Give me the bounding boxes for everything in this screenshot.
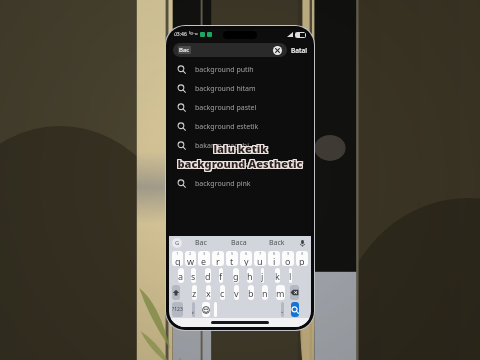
staticText: ,	[192, 304, 195, 315]
staticText: background putih	[195, 65, 254, 75]
button[interactable]: Baca	[220, 236, 258, 250]
staticText: h	[247, 270, 253, 282]
staticText: r	[216, 255, 220, 266]
staticText: z	[192, 287, 197, 299]
button[interactable]: v	[234, 285, 239, 300]
button[interactable]: 5	[226, 251, 238, 266]
button[interactable]: 9	[282, 251, 294, 266]
button[interactable]: s	[191, 268, 196, 283]
staticText: lalu ketik	[214, 141, 269, 156]
button[interactable]: background pink	[169, 174, 311, 193]
button[interactable]: Back	[258, 236, 296, 250]
button[interactable]: l	[289, 268, 292, 283]
button[interactable]: 2	[185, 251, 196, 266]
staticText: Back	[269, 238, 285, 248]
staticText: ?123	[172, 306, 183, 313]
button[interactable]: background putih	[169, 60, 311, 79]
button[interactable]: b	[248, 285, 254, 300]
button[interactable]: 6	[240, 251, 252, 266]
button[interactable]: bakaran magubi	[169, 136, 311, 155]
staticText: Bac	[179, 46, 190, 54]
button[interactable]: Voice input	[296, 237, 308, 249]
staticText: v	[234, 287, 239, 299]
button[interactable]: 7	[254, 251, 266, 266]
staticText: background Aesthetic	[178, 157, 304, 172]
staticText: lalu ketik	[214, 140, 269, 155]
button[interactable]: 8	[268, 251, 280, 266]
staticText: a	[178, 270, 184, 282]
staticText: background Aesthetic	[177, 155, 303, 170]
button[interactable]: Bac	[178, 43, 282, 57]
button[interactable]	[214, 302, 217, 317]
button[interactable]: z	[192, 285, 197, 300]
button[interactable]: 1	[172, 251, 183, 266]
button[interactable]: g	[233, 268, 239, 283]
button[interactable]: a	[178, 268, 184, 283]
button[interactable]: background estetik	[169, 117, 311, 136]
staticText: w	[187, 255, 195, 266]
staticText: background Aesthetic	[177, 156, 303, 171]
button[interactable]: Google	[172, 238, 182, 248]
button[interactable]: 3	[198, 251, 210, 266]
staticText: y	[244, 255, 249, 266]
staticText: background Aesthetic	[176, 157, 302, 172]
staticText: i	[273, 255, 276, 266]
staticText: background Aesthetic	[177, 157, 303, 172]
staticText: m	[276, 287, 285, 299]
button[interactable]: d	[205, 268, 211, 283]
button[interactable]: ,	[192, 302, 195, 317]
button[interactable]: .	[281, 302, 284, 317]
staticText: n	[262, 287, 268, 299]
staticText: b	[248, 287, 254, 299]
staticText: o	[285, 255, 291, 266]
staticText: .	[281, 304, 284, 315]
button[interactable]	[291, 302, 299, 317]
staticText: background Aesthetic	[176, 155, 302, 170]
button[interactable]: f	[219, 268, 223, 283]
staticText: background estetik	[195, 122, 259, 132]
staticText: 03:46	[174, 31, 187, 38]
staticText: background Aesthetic	[178, 155, 304, 170]
staticText: lalu ketik	[214, 142, 269, 157]
staticText: Baca	[231, 238, 247, 248]
staticText: lalu ketik	[213, 141, 268, 156]
staticText: 3	[203, 251, 206, 256]
button[interactable]: background hitam	[169, 79, 311, 98]
button[interactable]: 0	[296, 251, 308, 266]
staticText: 2	[189, 251, 192, 256]
button[interactable]: n	[262, 285, 268, 300]
button[interactable]: h	[247, 268, 253, 283]
button[interactable]: Batal	[291, 46, 307, 55]
button[interactable]: c	[220, 285, 225, 300]
staticText: lalu ketik	[212, 140, 267, 155]
button[interactable]: ?123	[172, 302, 183, 317]
button[interactable]: background pastel	[169, 98, 311, 117]
staticText: x	[206, 287, 211, 299]
button[interactable]: m	[276, 285, 285, 300]
staticText: k	[275, 270, 280, 282]
staticText: 7	[259, 251, 262, 256]
button[interactable]: Bac	[182, 236, 220, 250]
button[interactable]: 4	[212, 251, 224, 266]
button[interactable]: k	[275, 268, 280, 283]
staticText: background pastel	[195, 103, 257, 113]
button[interactable]	[290, 285, 299, 300]
staticText: j	[261, 270, 264, 282]
staticText: background Aesthetic	[178, 156, 304, 171]
staticText: 4	[217, 251, 220, 256]
staticText: 5	[231, 251, 234, 256]
staticText: d	[205, 270, 211, 282]
button[interactable]	[172, 285, 180, 300]
staticText: Batal	[291, 46, 307, 55]
button[interactable]: x	[206, 285, 211, 300]
staticText: ⁵ᴳ⁺ ᵛᵒ	[189, 32, 198, 37]
button[interactable]: j	[261, 268, 264, 283]
staticText: 6	[245, 251, 248, 256]
staticText: t	[230, 255, 234, 266]
button[interactable]	[202, 302, 210, 317]
button[interactable]: background aesthetic pastel	[169, 155, 311, 174]
staticText: q	[175, 255, 181, 266]
staticText: G	[175, 239, 180, 247]
staticText: g	[233, 270, 239, 282]
